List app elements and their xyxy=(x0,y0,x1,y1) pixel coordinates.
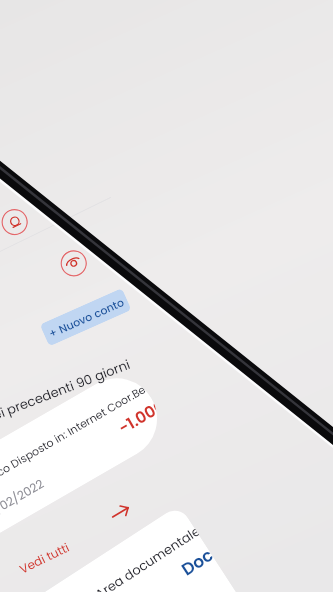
staticText: -1.000 xyxy=(114,398,162,439)
staticText: Documento da xyxy=(177,543,217,581)
staticText: Bonifico Disposto in: Internet Coor.Bene… xyxy=(0,381,149,494)
staticText: + Nuovo conto xyxy=(46,294,126,341)
staticText: Area documentale xyxy=(91,523,201,592)
button[interactable]: Notifications xyxy=(0,204,33,240)
staticText: Vedi tutti xyxy=(16,538,72,577)
button[interactable]: + Nuovo conto xyxy=(40,288,132,346)
button[interactable]: Bonifico Disposto in: Internet Coor.Bene… xyxy=(0,363,172,592)
staticText: 17/02/2022 xyxy=(0,475,47,522)
button[interactable]: Vedi tutti xyxy=(16,538,72,577)
staticText: Movimento nei precedenti 90 giorni xyxy=(0,355,133,454)
button[interactable]: Area documentale xyxy=(0,505,294,592)
button[interactable]: Show balance xyxy=(56,245,92,281)
